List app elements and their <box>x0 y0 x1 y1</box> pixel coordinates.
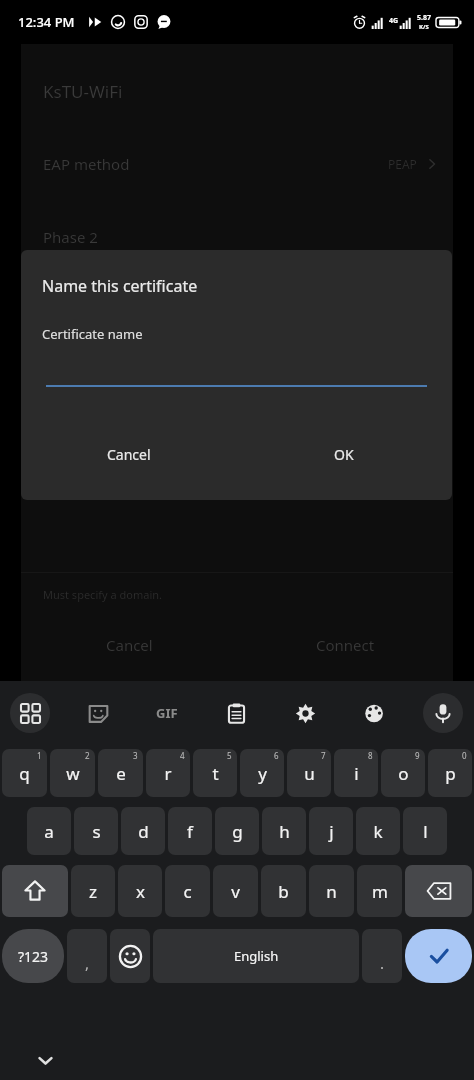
button[interactable]: Settings <box>286 694 324 732</box>
button[interactable]: OK <box>236 432 452 476</box>
button[interactable]: m <box>357 865 402 917</box>
button[interactable]: , <box>67 929 107 983</box>
staticText: Connect <box>316 635 375 655</box>
staticText: 8 <box>368 750 373 761</box>
staticText: u <box>304 762 315 785</box>
button[interactable]: h <box>262 807 306 855</box>
button[interactable]: u <box>287 749 331 797</box>
staticText: 0 <box>462 750 467 761</box>
staticText: e <box>116 762 126 785</box>
button[interactable]: Hide keyboard <box>30 1045 60 1075</box>
button[interactable]: j <box>309 807 353 855</box>
button[interactable]: Backspace <box>405 865 472 917</box>
staticText: Certificate name <box>42 325 143 343</box>
staticText: j <box>329 820 334 843</box>
staticText: r <box>164 762 172 785</box>
button[interactable]: y <box>240 749 284 797</box>
button[interactable]: Theme <box>355 694 393 732</box>
button[interactable]: Apps <box>10 693 50 733</box>
staticText: o <box>398 762 409 785</box>
button[interactable]: o <box>381 749 425 797</box>
button[interactable]: i <box>334 749 378 797</box>
button[interactable]: English <box>153 929 359 983</box>
button[interactable]: c <box>165 865 210 917</box>
button[interactable]: Emoji <box>110 929 150 983</box>
staticText: v <box>231 880 240 903</box>
button[interactable]: ?123 <box>2 929 64 983</box>
staticText: English <box>234 947 279 965</box>
staticText: 7 <box>321 750 326 761</box>
staticText: t <box>212 762 219 785</box>
staticText: Phase 2 <box>43 227 98 247</box>
staticText: g <box>232 820 243 843</box>
staticText: d <box>138 820 149 843</box>
button[interactable]: Shift <box>2 865 68 917</box>
staticText: 5 <box>227 750 232 761</box>
staticText: h <box>279 820 290 843</box>
button[interactable]: g <box>215 807 259 855</box>
button[interactable]: Enter <box>405 929 472 983</box>
staticText: p <box>445 762 456 785</box>
button[interactable]: Clipboard <box>217 694 255 732</box>
button[interactable]: k <box>356 807 400 855</box>
staticText: KsTU-WiFi <box>43 80 123 103</box>
button[interactable]: r <box>146 749 190 797</box>
button[interactable]: Cancel <box>21 625 237 665</box>
button[interactable]: l <box>403 807 447 855</box>
button[interactable]: e <box>98 749 143 797</box>
button[interactable]: t <box>193 749 237 797</box>
staticText: Name this certificate <box>42 275 198 297</box>
staticText: x <box>136 880 145 903</box>
button[interactable]: f <box>168 807 212 855</box>
staticText: l <box>423 820 428 843</box>
staticText: b <box>278 880 289 903</box>
staticText: a <box>44 820 54 843</box>
staticText: 6 <box>274 750 279 761</box>
staticText: 4G <box>389 16 399 26</box>
staticText: Cancel <box>106 635 153 655</box>
staticText: Must specify a domain. <box>43 587 162 602</box>
staticText: 12:34 PM <box>18 13 75 31</box>
staticText: q <box>19 762 30 785</box>
button[interactable]: a <box>27 807 71 855</box>
button[interactable]: v <box>213 865 258 917</box>
staticText: 1 <box>37 750 42 761</box>
staticText: EAP method <box>43 154 130 174</box>
button[interactable]: b <box>261 865 306 917</box>
button[interactable]: . <box>362 929 402 983</box>
staticText: OK <box>334 445 354 464</box>
button[interactable]: w <box>50 749 95 797</box>
staticText: i <box>354 762 359 785</box>
staticText: Cancel <box>107 445 151 464</box>
staticText: k <box>373 820 383 843</box>
staticText: 4 <box>180 750 185 761</box>
button[interactable]: d <box>121 807 165 855</box>
button[interactable]: q <box>2 749 47 797</box>
button[interactable]: GIF <box>148 694 186 732</box>
staticText: z <box>89 880 97 903</box>
button[interactable]: p <box>428 749 472 797</box>
button[interactable]: Stickers <box>79 694 117 732</box>
staticText: s <box>92 820 101 843</box>
staticText: GIF <box>156 704 178 722</box>
button[interactable]: Cancel <box>21 432 236 476</box>
staticText: PEAP <box>388 156 417 172</box>
button[interactable]: Connect <box>237 625 453 665</box>
staticText: 3 <box>133 750 138 761</box>
staticText: ?123 <box>18 947 49 966</box>
staticText: , <box>85 953 90 973</box>
button[interactable]: Voice input <box>423 693 463 733</box>
staticText: 9 <box>415 750 420 761</box>
button[interactable]: n <box>309 865 354 917</box>
staticText: K/S <box>419 23 429 31</box>
staticText: f <box>187 820 193 843</box>
staticText: 5.87 <box>417 13 431 23</box>
staticText: 2 <box>85 750 90 761</box>
staticText: . <box>380 953 385 973</box>
button[interactable]: x <box>118 865 162 917</box>
button[interactable]: s <box>74 807 118 855</box>
staticText: m <box>372 880 388 903</box>
staticText: y <box>258 762 267 785</box>
button[interactable]: z <box>71 865 115 917</box>
staticText: c <box>183 880 192 903</box>
